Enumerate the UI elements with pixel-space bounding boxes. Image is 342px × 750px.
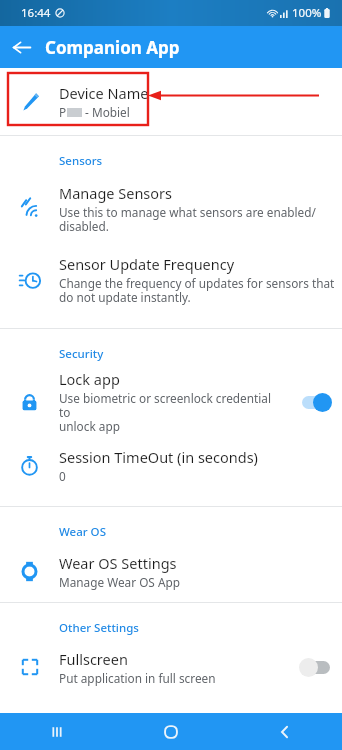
staticText: Manage Wear OS App: [59, 574, 180, 590]
staticText: - Mobiel: [82, 104, 130, 120]
staticText: Wear OS Settings: [59, 553, 177, 573]
button[interactable]: Back: [228, 713, 342, 750]
button[interactable]: Home: [114, 713, 228, 750]
staticText: Sensors: [59, 153, 103, 169]
staticText: Wear OS: [59, 524, 106, 540]
staticText: Companion App: [45, 36, 180, 59]
button[interactable]: Lock app: [0, 367, 342, 437]
button[interactable]: Recent apps: [0, 713, 114, 750]
button[interactable]: Wear OS Settings: [0, 545, 342, 597]
staticText: Manage Sensors: [59, 183, 172, 203]
button[interactable]: Device Name: [0, 68, 342, 135]
staticText: Use this to manage what sensors are enab…: [59, 204, 316, 235]
staticText: Security: [59, 346, 104, 362]
staticText: 0: [59, 468, 66, 484]
staticText: Device Name: [59, 83, 149, 103]
staticText: Other Settings: [59, 620, 139, 636]
staticText: Sensor Update Frequency: [59, 254, 235, 274]
button[interactable]: Sensor Update Frequency: [0, 244, 342, 316]
staticText: 16:44: [21, 5, 51, 21]
staticText: Fullscreen: [59, 649, 128, 669]
button[interactable]: Fullscreen: [0, 641, 342, 693]
button[interactable]: Navigate up: [0, 26, 42, 68]
staticText: Session TimeOut (in seconds): [59, 447, 258, 467]
staticText: Use biometric or screenlock credential t…: [59, 390, 284, 435]
button[interactable]: Manage Sensors: [0, 174, 342, 244]
staticText: Lock app: [59, 369, 120, 389]
staticText: Put application in full screen: [59, 670, 216, 686]
staticText: 100%: [292, 5, 322, 21]
button[interactable]: Session TimeOut (in seconds): [0, 437, 342, 494]
staticText: Change the frequency of updates for sens…: [59, 275, 335, 306]
staticText: P: [59, 104, 67, 120]
